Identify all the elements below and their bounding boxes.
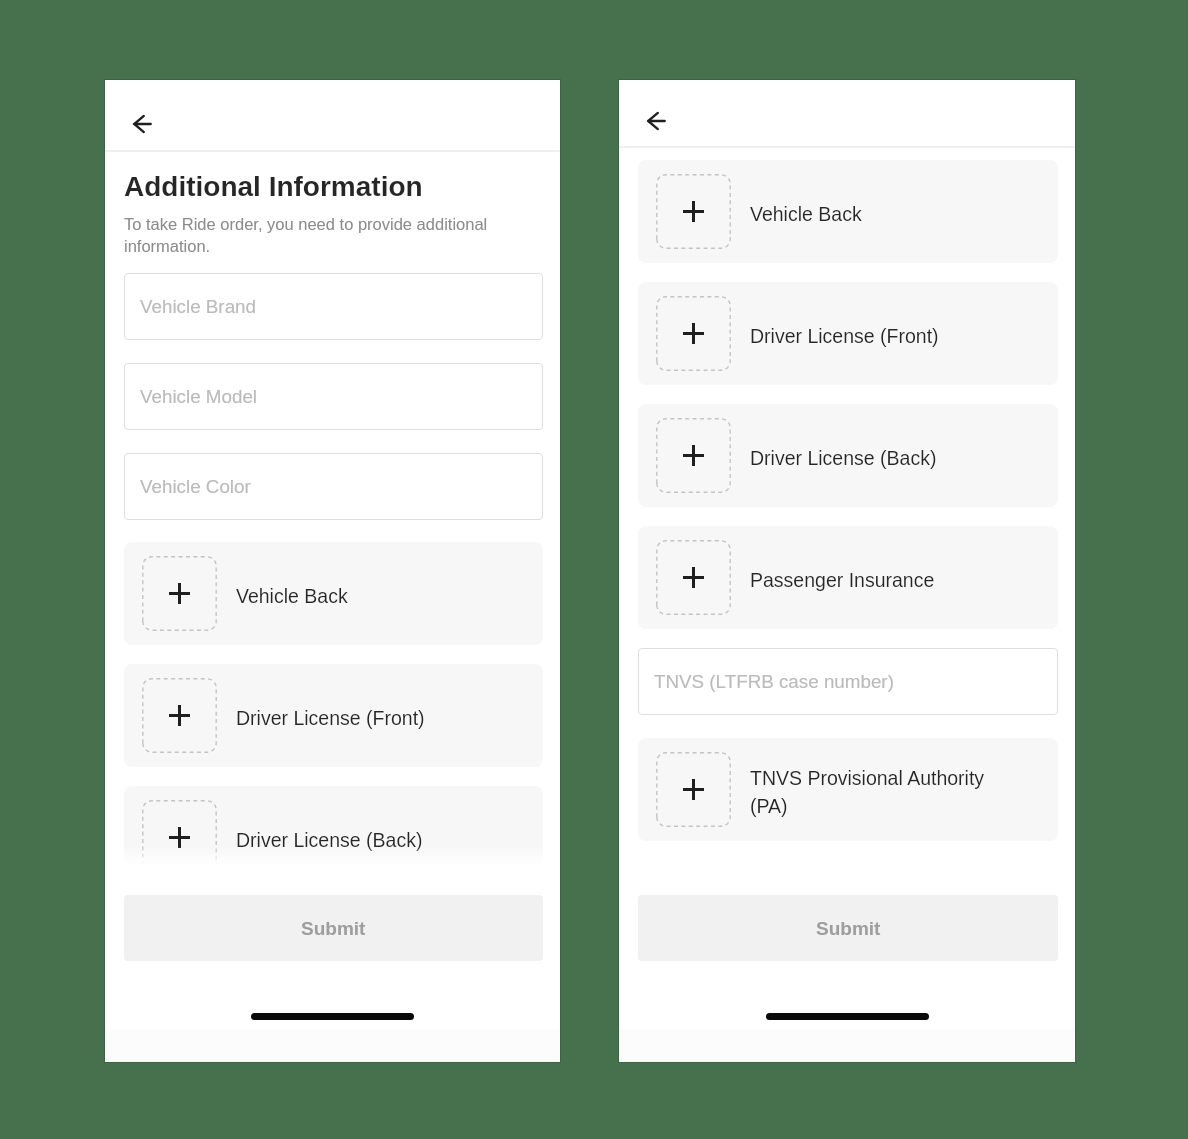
button[interactable]: TNVS Provisional Authority (PA)	[638, 738, 1058, 841]
button[interactable]: Vehicle Model	[124, 363, 543, 430]
button[interactable]: Driver License (Back)	[124, 786, 543, 866]
staticText: To take Ride order, you need to provide …	[124, 212, 543, 256]
staticText: Driver License (Back)	[750, 443, 1022, 471]
button[interactable]: Driver License (Front)	[124, 664, 543, 767]
button[interactable]: Back	[124, 106, 160, 142]
staticText: Vehicle Back	[750, 199, 1022, 227]
button[interactable]: Vehicle Color	[124, 453, 543, 520]
staticText: Vehicle Brand	[140, 296, 256, 317]
button[interactable]: Vehicle Brand	[124, 273, 543, 340]
staticText: Passenger Insurance	[750, 565, 1022, 593]
button[interactable]: Back	[638, 103, 674, 139]
button[interactable]: Passenger Insurance	[638, 526, 1058, 629]
button[interactable]: Vehicle Back	[124, 542, 543, 645]
button[interactable]: Submit	[638, 895, 1058, 961]
button[interactable]: Driver License (Back)	[638, 404, 1058, 507]
button[interactable]: Vehicle Back	[638, 160, 1058, 263]
staticText: Additional Information	[124, 170, 423, 203]
staticText: Submit	[301, 918, 366, 939]
staticText: Driver License (Front)	[236, 703, 508, 731]
button[interactable]: Submit	[124, 895, 543, 961]
button[interactable]: Driver License (Front)	[638, 282, 1058, 385]
staticText: TNVS Provisional Authority (PA)	[750, 763, 1022, 819]
staticText: Vehicle Model	[140, 386, 258, 407]
button[interactable]: TNVS (LTFRB case number)	[638, 648, 1058, 715]
staticText: Driver License (Back)	[236, 825, 508, 853]
staticText: Submit	[816, 918, 881, 939]
staticText: Driver License (Front)	[750, 321, 1022, 349]
staticText: TNVS (LTFRB case number)	[654, 671, 894, 692]
staticText: Vehicle Color	[140, 476, 251, 497]
staticText: Vehicle Back	[236, 581, 508, 609]
